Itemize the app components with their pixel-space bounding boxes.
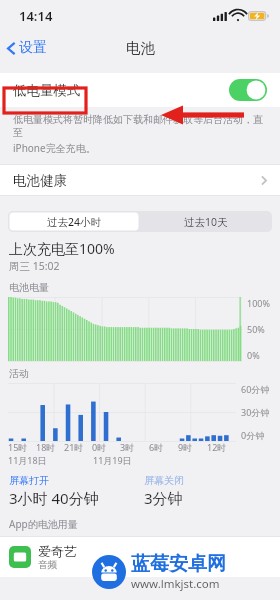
- staticText: 30分钟: [241, 406, 270, 418]
- staticText: 0分钟: [241, 429, 265, 441]
- staticText: 电池电量: [9, 281, 49, 294]
- staticText: 3时: [120, 441, 135, 453]
- staticText: 0%: [247, 349, 260, 361]
- staticText: 低电量模式: [13, 82, 81, 99]
- staticText: 60分钟: [241, 383, 270, 395]
- button[interactable]: 电池健康: [0, 165, 280, 195]
- staticText: 11月18日: [8, 454, 47, 466]
- staticText: 11月19日: [93, 454, 132, 466]
- staticText: 周三 15:02: [9, 259, 60, 273]
- staticText: 设置: [19, 39, 47, 57]
- staticText: 18时: [36, 441, 56, 453]
- staticText: 活动: [9, 367, 29, 380]
- staticText: 过去10天: [184, 215, 228, 229]
- button[interactable]: 爱奇艺: [0, 537, 280, 577]
- staticText: 9时: [178, 441, 193, 453]
- staticText: 3分钟: [144, 488, 183, 508]
- staticText: 3小时 40分钟: [9, 488, 99, 508]
- button[interactable]: 过去10天: [140, 211, 272, 232]
- staticText: 爱奇艺: [38, 543, 77, 559]
- staticText: 屏幕关闭: [144, 474, 184, 487]
- staticText: 50%: [247, 323, 265, 335]
- staticText: 过去24小时: [47, 215, 102, 229]
- staticText: App的电池用量: [9, 517, 78, 531]
- staticText: 14:14: [19, 7, 53, 25]
- staticText: 音频: [38, 559, 57, 571]
- staticText: 15时: [8, 441, 28, 453]
- staticText: 0时: [92, 441, 107, 453]
- button[interactable]: 低电量模式: [0, 73, 280, 107]
- staticText: 电池: [126, 39, 155, 57]
- staticText: 100%: [247, 297, 270, 309]
- button[interactable]: 设置: [0, 35, 55, 61]
- staticText: 21时: [64, 441, 84, 453]
- staticText: 屏幕打开: [9, 474, 49, 487]
- staticText: 蓝莓安卓网: [131, 552, 226, 576]
- staticText: www.lmkjst.com: [131, 576, 220, 592]
- staticText: 低电量模式将暂时降低如下载和邮件获取等后台活动，直至: [13, 113, 267, 139]
- staticText: 上次充电至100%: [9, 239, 115, 258]
- staticText: iPhone完全充电。: [13, 141, 96, 155]
- button[interactable]: 过去24小时: [8, 211, 140, 232]
- staticText: 6时: [149, 441, 164, 453]
- staticText: 12时: [207, 441, 227, 453]
- staticText: 电池健康: [13, 172, 67, 189]
